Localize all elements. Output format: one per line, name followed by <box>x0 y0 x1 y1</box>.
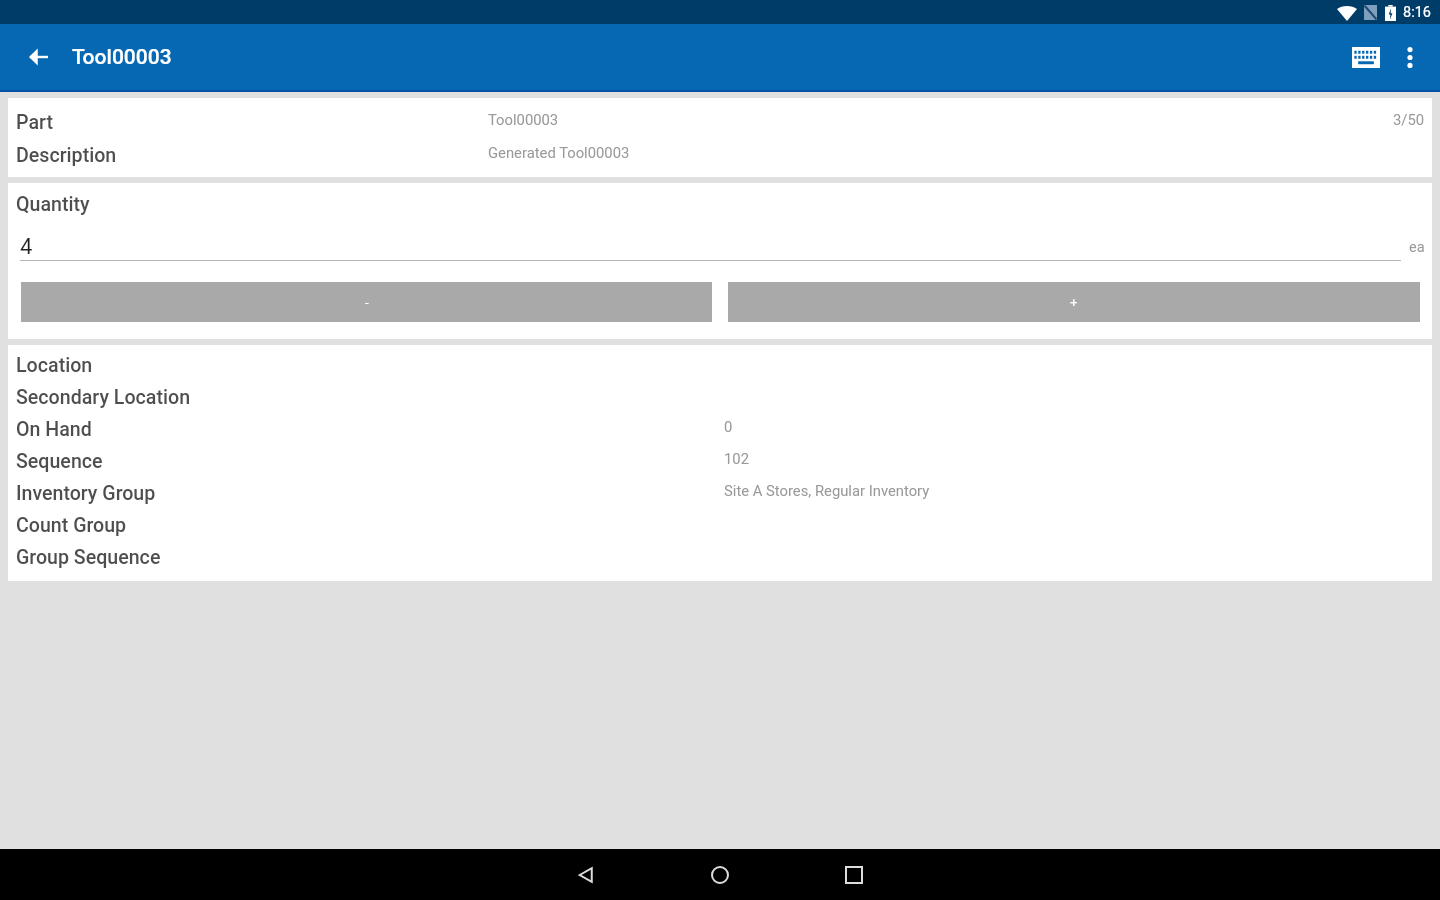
button[interactable]: Recents <box>824 849 884 900</box>
button[interactable]: Description <box>16 144 1432 167</box>
button[interactable]: On Hand <box>16 416 1432 448</box>
staticText: ea <box>1409 239 1425 256</box>
staticText: Sequence <box>16 450 103 473</box>
button[interactable]: Navigate up <box>18 37 58 77</box>
button[interactable]: Sequence <box>16 448 1432 480</box>
staticText: 4 <box>20 234 33 260</box>
button[interactable]: Group Sequence <box>16 544 1432 576</box>
staticText: Secondary Location <box>16 386 191 409</box>
staticText: 0 <box>724 418 733 435</box>
staticText: Quantity <box>16 193 90 216</box>
staticText: + <box>1070 295 1078 310</box>
staticText: Location <box>16 354 93 377</box>
staticText: Site A Stores, Regular Inventory <box>724 482 930 499</box>
button[interactable]: Inventory Group <box>16 480 1432 512</box>
button[interactable]: Count Group <box>16 512 1432 544</box>
staticText: - <box>365 295 369 310</box>
staticText: 102 <box>724 450 749 467</box>
staticText: Tool00003 <box>488 111 559 128</box>
button[interactable]: Part <box>16 111 1432 134</box>
button[interactable]: Location <box>16 352 1432 384</box>
staticText: Count Group <box>16 514 127 537</box>
staticText: Group Sequence <box>16 546 161 569</box>
staticText: Part <box>16 111 53 134</box>
staticText: Tool00003 <box>72 45 172 70</box>
button[interactable]: Secondary Location <box>16 384 1432 416</box>
button[interactable]: Show keyboard <box>1342 33 1390 81</box>
button[interactable]: Home <box>690 849 750 900</box>
staticText: Description <box>16 144 117 167</box>
button[interactable]: Quantity value <box>20 234 1425 261</box>
staticText: Inventory Group <box>16 482 156 505</box>
staticText: On Hand <box>16 418 92 441</box>
staticText: Generated Tool00003 <box>488 144 630 161</box>
staticText: 8:16 <box>1403 4 1431 21</box>
button[interactable]: More options <box>1394 33 1426 81</box>
button[interactable]: Back <box>556 849 616 900</box>
staticText: 3/50 <box>1393 111 1425 128</box>
